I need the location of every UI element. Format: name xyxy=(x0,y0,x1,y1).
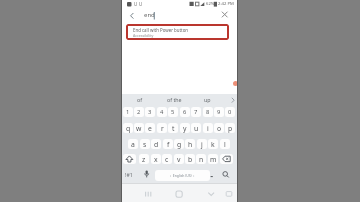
button[interactable]: 6 xyxy=(180,107,190,117)
button[interactable]: k xyxy=(208,139,218,149)
button[interactable]: d xyxy=(151,139,161,149)
staticText: h xyxy=(188,140,193,149)
staticText: 5 xyxy=(171,108,175,116)
button[interactable]: q xyxy=(123,123,133,133)
button[interactable]: 8 xyxy=(203,107,213,117)
staticText: m xyxy=(210,155,217,164)
staticText: 8 xyxy=(206,108,210,116)
staticText: c xyxy=(165,155,169,164)
staticText: r xyxy=(161,124,164,133)
button[interactable]: r xyxy=(157,123,167,133)
button[interactable] xyxy=(123,154,136,164)
button[interactable]: of xyxy=(137,96,143,103)
button[interactable]: !#1 xyxy=(125,171,133,178)
button[interactable] xyxy=(174,189,184,199)
button[interactable]: m xyxy=(208,154,218,164)
button[interactable] xyxy=(220,154,233,164)
button[interactable]: h xyxy=(185,139,195,149)
staticText: End call with Power button xyxy=(133,27,189,33)
button[interactable] xyxy=(224,189,234,199)
button[interactable]: 1 xyxy=(123,107,133,117)
staticText: z xyxy=(142,155,146,164)
button[interactable]: v xyxy=(174,154,184,164)
button[interactable]: n xyxy=(196,154,206,164)
button[interactable]: w xyxy=(134,123,144,133)
button[interactable]: j xyxy=(197,139,207,149)
button[interactable]: up xyxy=(204,96,211,103)
staticText: U xyxy=(134,1,138,7)
button[interactable]: 2 xyxy=(134,107,144,117)
button[interactable]: s xyxy=(140,139,150,149)
staticText: i xyxy=(207,124,209,133)
button[interactable]: x xyxy=(151,154,161,164)
staticText: ‹ English (US) › xyxy=(170,173,195,178)
button[interactable]: 7 xyxy=(191,107,201,117)
button[interactable]: a xyxy=(128,139,138,149)
button[interactable]: l xyxy=(220,139,230,149)
button[interactable] xyxy=(143,189,153,199)
staticText: a xyxy=(131,140,135,149)
staticText: x xyxy=(154,155,158,164)
button[interactable]: c xyxy=(162,154,172,164)
button[interactable]: 9 xyxy=(214,107,224,117)
staticText: 3 xyxy=(148,108,152,116)
staticText: b xyxy=(188,155,193,164)
staticText: f xyxy=(167,140,170,149)
staticText: p xyxy=(228,124,233,133)
button[interactable]: ‹ English (US) › xyxy=(155,170,210,181)
staticText: o xyxy=(217,124,222,133)
button[interactable]: 0 xyxy=(225,107,235,117)
staticText: 2 xyxy=(137,108,141,116)
button[interactable]: 4 xyxy=(157,107,167,117)
staticText: 4 xyxy=(160,108,164,116)
staticText: k xyxy=(211,140,215,149)
staticText: U xyxy=(139,1,143,7)
button[interactable]: e xyxy=(145,123,155,133)
staticText: 2:42 PM xyxy=(218,1,234,7)
staticText: e xyxy=(148,124,152,133)
button[interactable]: g xyxy=(174,139,184,149)
staticText: g xyxy=(177,140,182,149)
button[interactable] xyxy=(219,9,231,21)
button[interactable]: z xyxy=(139,154,149,164)
button[interactable]: y xyxy=(180,123,190,133)
button[interactable]: 3 xyxy=(145,107,155,117)
staticText: y xyxy=(183,124,187,133)
staticText: w xyxy=(136,124,142,133)
button[interactable] xyxy=(206,189,216,199)
staticText: u xyxy=(194,124,199,133)
staticText: 9 xyxy=(217,108,221,116)
button[interactable]: u xyxy=(191,123,201,133)
button[interactable] xyxy=(127,10,139,22)
staticText: 62% xyxy=(206,1,215,7)
button[interactable]: o xyxy=(214,123,224,133)
staticText: Accessibility xyxy=(133,33,154,38)
staticText: d xyxy=(154,140,159,149)
staticText: l xyxy=(224,140,226,149)
button[interactable]: p xyxy=(225,123,235,133)
button[interactable]: i xyxy=(203,123,213,133)
button[interactable]: b xyxy=(185,154,195,164)
staticText: j xyxy=(201,140,203,149)
staticText: 1 xyxy=(126,108,130,116)
button[interactable]: End call with Power button xyxy=(126,24,229,40)
staticText: 7 xyxy=(194,108,198,116)
button[interactable]: t xyxy=(168,123,178,133)
button[interactable]: f xyxy=(163,139,173,149)
staticText: 6 xyxy=(183,108,187,116)
staticText: q xyxy=(126,124,131,133)
staticText: t xyxy=(172,124,175,133)
staticText: s xyxy=(143,140,147,149)
button[interactable]: of the xyxy=(167,96,182,103)
staticText: end xyxy=(144,11,155,19)
staticText: 0 xyxy=(228,108,232,116)
staticText: n xyxy=(199,155,204,164)
staticText: v xyxy=(177,155,181,164)
button[interactable]: 5 xyxy=(168,107,178,117)
